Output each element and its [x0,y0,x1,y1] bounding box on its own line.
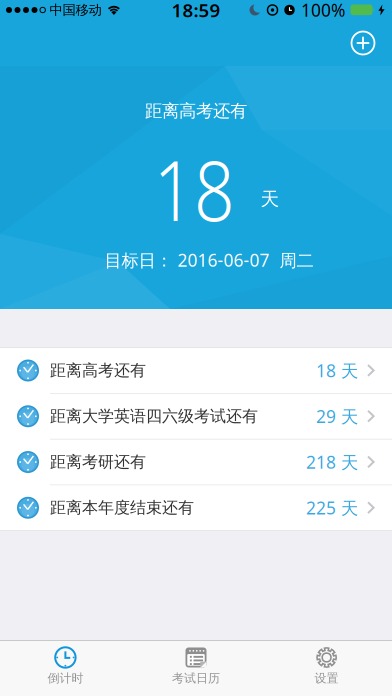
staticText: 设置 [315,671,339,686]
button[interactable]: 倒计时 [0,641,131,695]
staticText: 225 天 [306,496,358,519]
staticText: 距离高考还有 [50,361,146,380]
staticText: 18:59 [171,0,220,22]
staticText: 100% [301,0,345,21]
staticText: 18 [147,134,241,244]
button[interactable]: 距离大学英语四六级考试还有 [0,394,392,440]
staticText: 倒计时 [47,671,83,686]
button[interactable]: 距离高考还有 [0,348,392,394]
staticText: 考试日历 [172,671,220,686]
button[interactable]: 考试日历 [131,641,261,695]
staticText: 29 天 [316,405,358,428]
staticText: 距离高考还有 [145,100,247,122]
staticText: 18 天 [316,359,358,382]
staticText: 中国移动 [49,2,101,18]
staticText: 距离考研还有 [50,452,146,472]
button[interactable]: 添加倒计时 [347,27,379,59]
button[interactable]: 距离考研还有 [0,439,392,485]
button[interactable]: 设置 [261,641,392,695]
staticText: 天 [260,187,279,210]
staticText: 218 天 [306,450,358,473]
staticText: 目标日： 2016-06-07 周二 [104,248,313,271]
staticText: 距离本年度结束还有 [50,498,194,518]
button[interactable]: 距离本年度结束还有 [0,485,392,530]
staticText: 距离大学英语四六级考试还有 [50,406,258,426]
